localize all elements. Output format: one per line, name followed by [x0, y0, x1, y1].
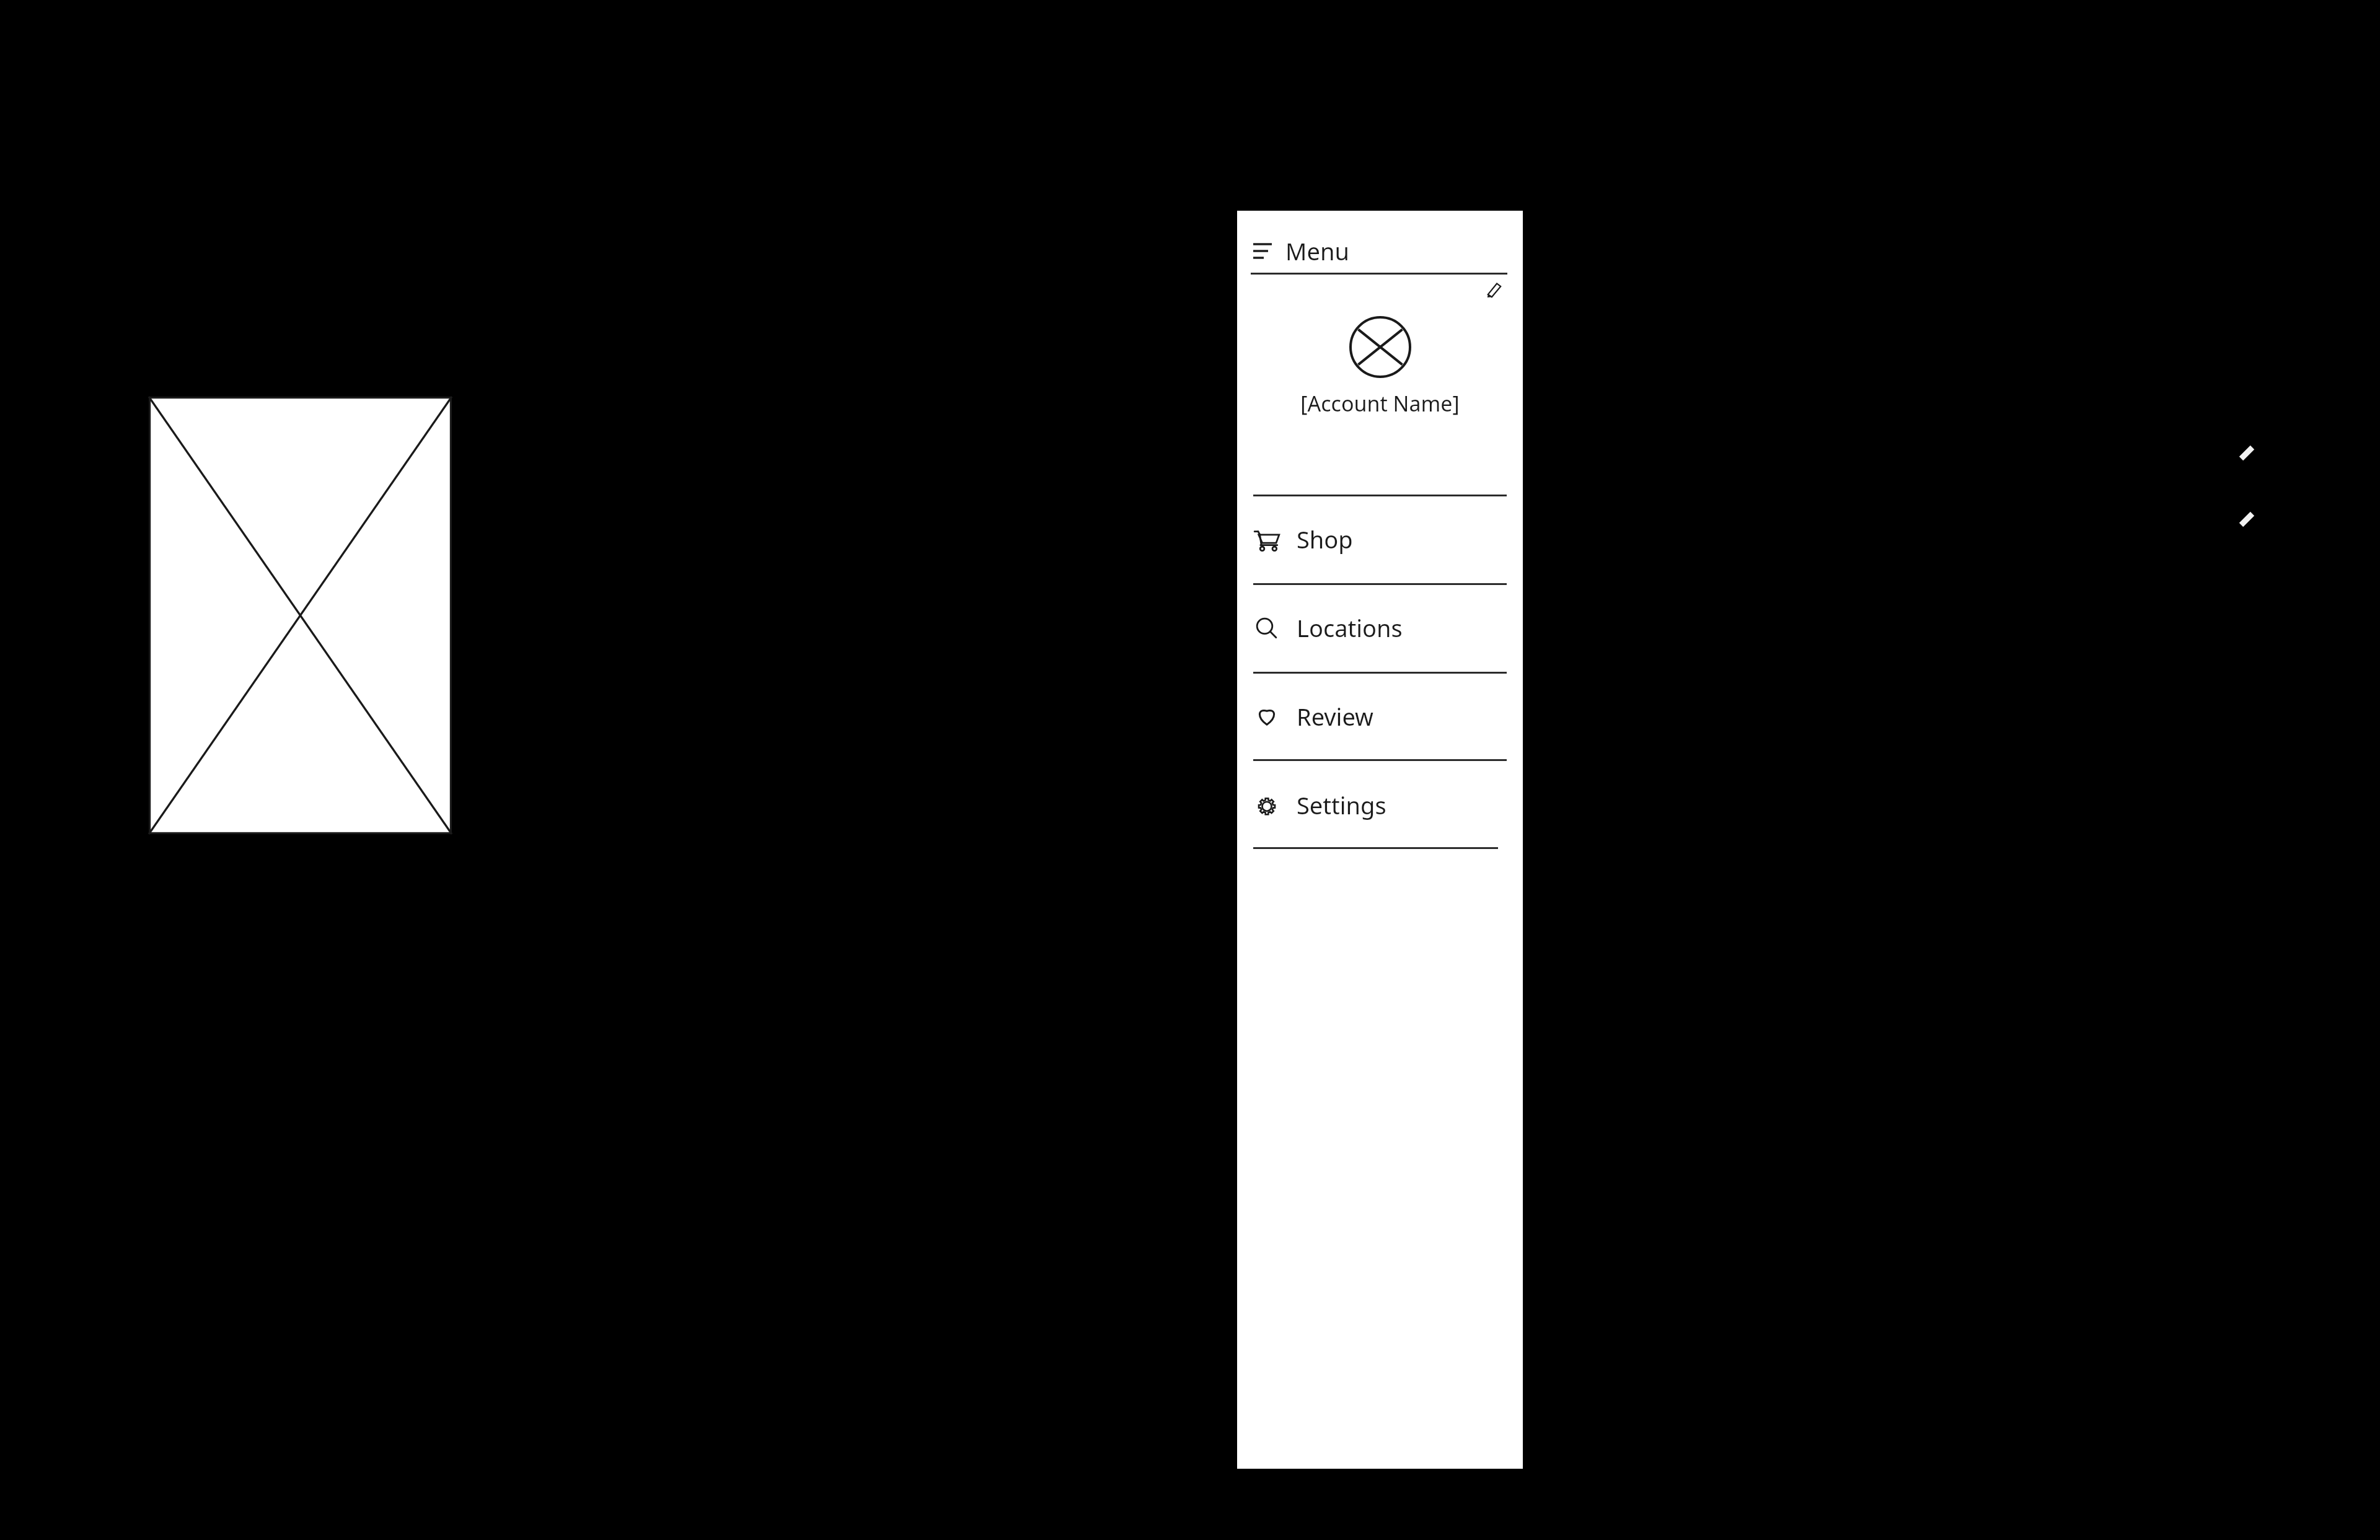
staticText: Review: [1297, 700, 1373, 733]
button[interactable]: Open navigation menu: [1237, 228, 1523, 274]
button[interactable]: Settings: [1237, 762, 1523, 848]
staticText: Shop: [1297, 523, 1353, 555]
staticText: [Account Name]: [1300, 389, 1460, 418]
staticText: Menu: [1285, 235, 1349, 267]
button[interactable]: Account picture: [1349, 316, 1411, 378]
button[interactable]: Image placeholder: [149, 397, 452, 834]
other: Open navigation menu: [1252, 240, 1273, 262]
button[interactable]: Locations: [1237, 584, 1523, 671]
button[interactable]: Shop: [1237, 496, 1523, 583]
staticText: Locations: [1297, 612, 1403, 644]
button[interactable]: Review: [1237, 673, 1523, 760]
button[interactable]: Edit profile: [1484, 279, 1505, 300]
staticText: Settings: [1297, 789, 1386, 821]
button[interactable]: [Account Name]: [1237, 389, 1523, 418]
